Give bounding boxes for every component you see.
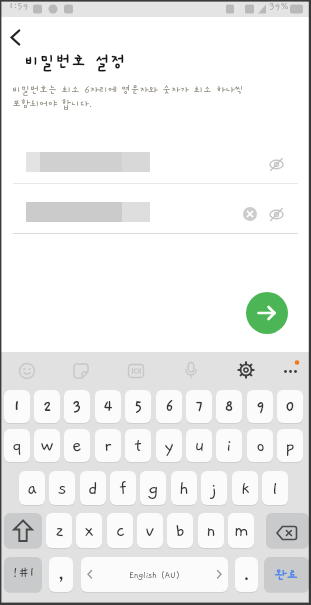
button[interactable] (242, 206, 258, 222)
button[interactable] (4, 513, 42, 548)
button[interactable]: r (95, 429, 121, 462)
staticText: 2 (43, 398, 52, 415)
staticText: 0 (285, 398, 295, 415)
staticText: 비밀번호 설정 (24, 53, 126, 72)
staticText: e (72, 435, 82, 456)
staticText: 완료 (275, 568, 298, 582)
button[interactable]: , (49, 557, 73, 592)
staticText: 9 (256, 398, 265, 415)
button[interactable]: e (64, 429, 90, 462)
button[interactable]: m (228, 513, 254, 548)
button[interactable]: t (125, 429, 151, 462)
button[interactable]: 7 (186, 390, 212, 423)
button[interactable] (71, 361, 91, 381)
staticText: 5 (134, 398, 143, 415)
button[interactable]: 2 (34, 390, 60, 423)
staticText: m (234, 520, 249, 541)
button[interactable]: f (110, 471, 136, 505)
button[interactable] (266, 513, 309, 548)
button[interactable]: v (137, 513, 163, 548)
button[interactable] (4, 26, 30, 50)
button[interactable] (281, 360, 301, 380)
button[interactable] (236, 360, 256, 380)
staticText: 1:59 (9, 1, 29, 12)
button[interactable]: 3 (64, 390, 90, 423)
button[interactable]: 완료 (264, 557, 309, 592)
staticText: i (226, 435, 232, 456)
button[interactable]: j (201, 471, 227, 505)
button[interactable] (266, 206, 287, 223)
button[interactable]: 6 (156, 390, 182, 423)
staticText: l (272, 478, 278, 499)
button[interactable]: 1 (4, 390, 30, 423)
button[interactable] (126, 361, 146, 381)
staticText: 6 (165, 398, 174, 415)
staticText: 3 (72, 398, 82, 415)
button[interactable]: x (76, 513, 102, 548)
button[interactable]: d (80, 471, 106, 505)
button[interactable] (17, 361, 37, 381)
button[interactable]: w (34, 429, 60, 462)
button[interactable]: !#1 (4, 557, 42, 592)
staticText: g (148, 478, 159, 499)
button[interactable]: a (19, 471, 45, 505)
button[interactable]: 4 (95, 390, 121, 423)
staticText: y (164, 435, 174, 456)
staticText: 7 (195, 398, 204, 415)
staticText: b (175, 520, 185, 541)
staticText: z (55, 520, 64, 541)
staticText: k (241, 478, 250, 499)
button[interactable]: . (235, 557, 258, 592)
staticText: p (285, 435, 295, 456)
staticText: u (194, 435, 205, 456)
staticText: w (40, 435, 54, 456)
button[interactable]: 0 (277, 390, 303, 423)
staticText: 8 (224, 398, 234, 415)
button[interactable]: g (140, 471, 166, 505)
button[interactable]: 8 (216, 390, 242, 423)
staticText: q (12, 435, 22, 456)
button[interactable]: l (262, 471, 288, 505)
button[interactable]: p (277, 429, 303, 462)
button[interactable]: y (156, 429, 182, 462)
staticText: 4 (103, 398, 113, 415)
button[interactable] (181, 360, 201, 380)
staticText: . (242, 560, 251, 586)
staticText: f (119, 478, 127, 499)
button[interactable]: h (171, 471, 197, 505)
staticText: c (116, 520, 125, 541)
button[interactable]: s (49, 471, 75, 505)
staticText: 39% (269, 1, 289, 12)
staticText: v (145, 520, 155, 541)
staticText: h (179, 478, 189, 499)
button[interactable] (266, 156, 287, 173)
button[interactable]: i (216, 429, 242, 462)
staticText: s (58, 478, 67, 499)
button[interactable]: k (232, 471, 258, 505)
button[interactable]: c (107, 513, 133, 548)
staticText: o (256, 435, 265, 456)
button[interactable]: 5 (125, 390, 151, 423)
button[interactable]: English (AU) (81, 557, 228, 592)
staticText: !#1 (12, 566, 35, 580)
staticText: a (27, 478, 37, 499)
staticText: English (AU) (129, 570, 180, 580)
staticText: x (84, 520, 94, 541)
staticText: 비밀번호는 최소 6자리에 영문자와 숫자가 최소 하나씩 포함되어야 합니다. (12, 85, 244, 109)
button[interactable]: o (247, 429, 273, 462)
button[interactable]: q (4, 429, 30, 462)
button[interactable]: n (198, 513, 224, 548)
button[interactable]: b (167, 513, 193, 548)
button[interactable]: u (186, 429, 212, 462)
button[interactable] (246, 292, 288, 334)
staticText: , (56, 560, 66, 586)
staticText: 1 (13, 398, 21, 415)
staticText: d (88, 478, 98, 499)
staticText: j (211, 478, 217, 499)
staticText: r (104, 435, 112, 456)
button[interactable]: z (46, 513, 72, 548)
staticText: n (206, 520, 216, 541)
staticText: t (134, 435, 142, 456)
button[interactable]: 9 (247, 390, 273, 423)
